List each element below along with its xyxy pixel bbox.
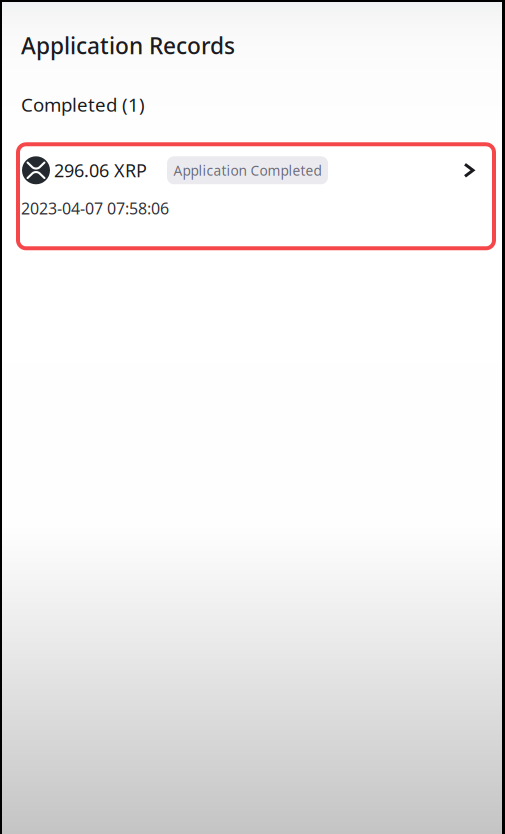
button[interactable]: 296.06 XRP [16,142,496,250]
staticText: Completed (1) [21,92,145,117]
staticText: Application Completed [173,161,321,180]
staticText: 2023-04-07 07:58:06 [21,197,169,219]
staticText: 296.06 XRP [54,158,147,182]
staticText: Application Records [21,30,235,61]
